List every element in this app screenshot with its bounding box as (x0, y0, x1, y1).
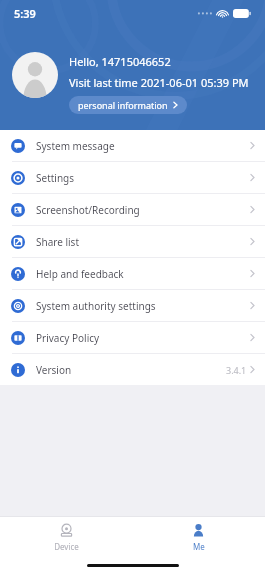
staticText: Hello, 14715046652 (69, 54, 171, 69)
button[interactable]: Me (132, 517, 265, 557)
button[interactable]: Version (0, 354, 265, 385)
staticText: Visit last time 2021-06-01 05:39 PM (69, 75, 249, 90)
staticText: personal information (78, 99, 168, 111)
button[interactable]: Settings (0, 162, 265, 193)
button[interactable]: personal information (69, 96, 187, 114)
staticText: 3.4.1 (226, 364, 247, 376)
button[interactable]: Avatar (12, 52, 58, 98)
button[interactable]: Device (0, 517, 132, 557)
staticText: 5:39 (14, 6, 36, 21)
button[interactable]: Help and feedback (0, 258, 265, 289)
button[interactable]: System authority settings (0, 290, 265, 321)
staticText: Help and feedback (36, 267, 124, 281)
button[interactable]: Screenshot/Recording (0, 194, 265, 225)
button[interactable]: System message (0, 130, 265, 161)
button[interactable]: Share list (0, 226, 265, 257)
staticText: System authority settings (36, 299, 156, 313)
staticText: Privacy Policy (36, 331, 100, 345)
staticText: Device (54, 541, 79, 552)
button[interactable]: Privacy Policy (0, 322, 265, 353)
staticText: Share list (36, 235, 80, 249)
staticText: Me (193, 541, 205, 552)
staticText: Screenshot/Recording (36, 203, 140, 217)
staticText: Version (36, 363, 72, 377)
staticText: System message (36, 139, 115, 153)
staticText: Settings (36, 171, 75, 185)
